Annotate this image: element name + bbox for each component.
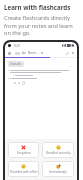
- button[interactable]: Circuits: [8, 61, 24, 67]
- button[interactable]: Recalled correctly: [42, 142, 74, 158]
- staticText: Recalled correctly: [46, 151, 71, 155]
- button[interactable]: Overflow: [72, 52, 74, 54]
- staticText: Aa: [22, 51, 26, 55]
- staticText: Immediately: [49, 170, 67, 174]
- button[interactable]: Recalled with effort: [8, 161, 39, 177]
- staticText: Learn with flashcards: [4, 3, 71, 11]
- staticText: Forgotten: [17, 151, 31, 155]
- staticText: 9:41: [14, 44, 21, 48]
- button[interactable]: Edit: [66, 52, 69, 55]
- button[interactable]: Aa: [22, 51, 26, 55]
- button[interactable]: Immediately: [42, 161, 74, 177]
- staticText: Recalled with effort: [10, 170, 38, 174]
- staticText: Circuits: [10, 62, 22, 66]
- button[interactable]: More: [41, 52, 43, 54]
- staticText: Norm...: [28, 51, 39, 55]
- button[interactable]: Forgotten: [8, 142, 39, 158]
- staticText: Create flashcards directly from your not…: [4, 14, 73, 36]
- button[interactable]: Norm...: [28, 51, 39, 55]
